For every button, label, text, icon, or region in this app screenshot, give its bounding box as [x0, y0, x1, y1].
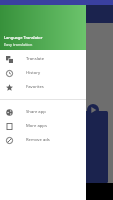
staticText: History — [26, 70, 41, 76]
staticText: Easy translation — [4, 42, 33, 47]
button[interactable]: Play — [87, 104, 99, 116]
staticText: Translate — [26, 56, 45, 62]
button[interactable]: More apps — [0, 119, 86, 133]
button[interactable]: Share app — [0, 105, 86, 119]
staticText: More apps — [26, 123, 47, 129]
button[interactable]: Favorites — [0, 80, 86, 94]
staticText: Favorites — [26, 84, 44, 90]
button[interactable]: Remove ads — [0, 133, 86, 147]
staticText: Language Translator — [4, 35, 43, 40]
staticText: Remove ads — [26, 137, 50, 143]
button[interactable]: History — [0, 66, 86, 80]
button[interactable]: Translate — [0, 52, 86, 66]
staticText: Share app — [26, 109, 46, 115]
